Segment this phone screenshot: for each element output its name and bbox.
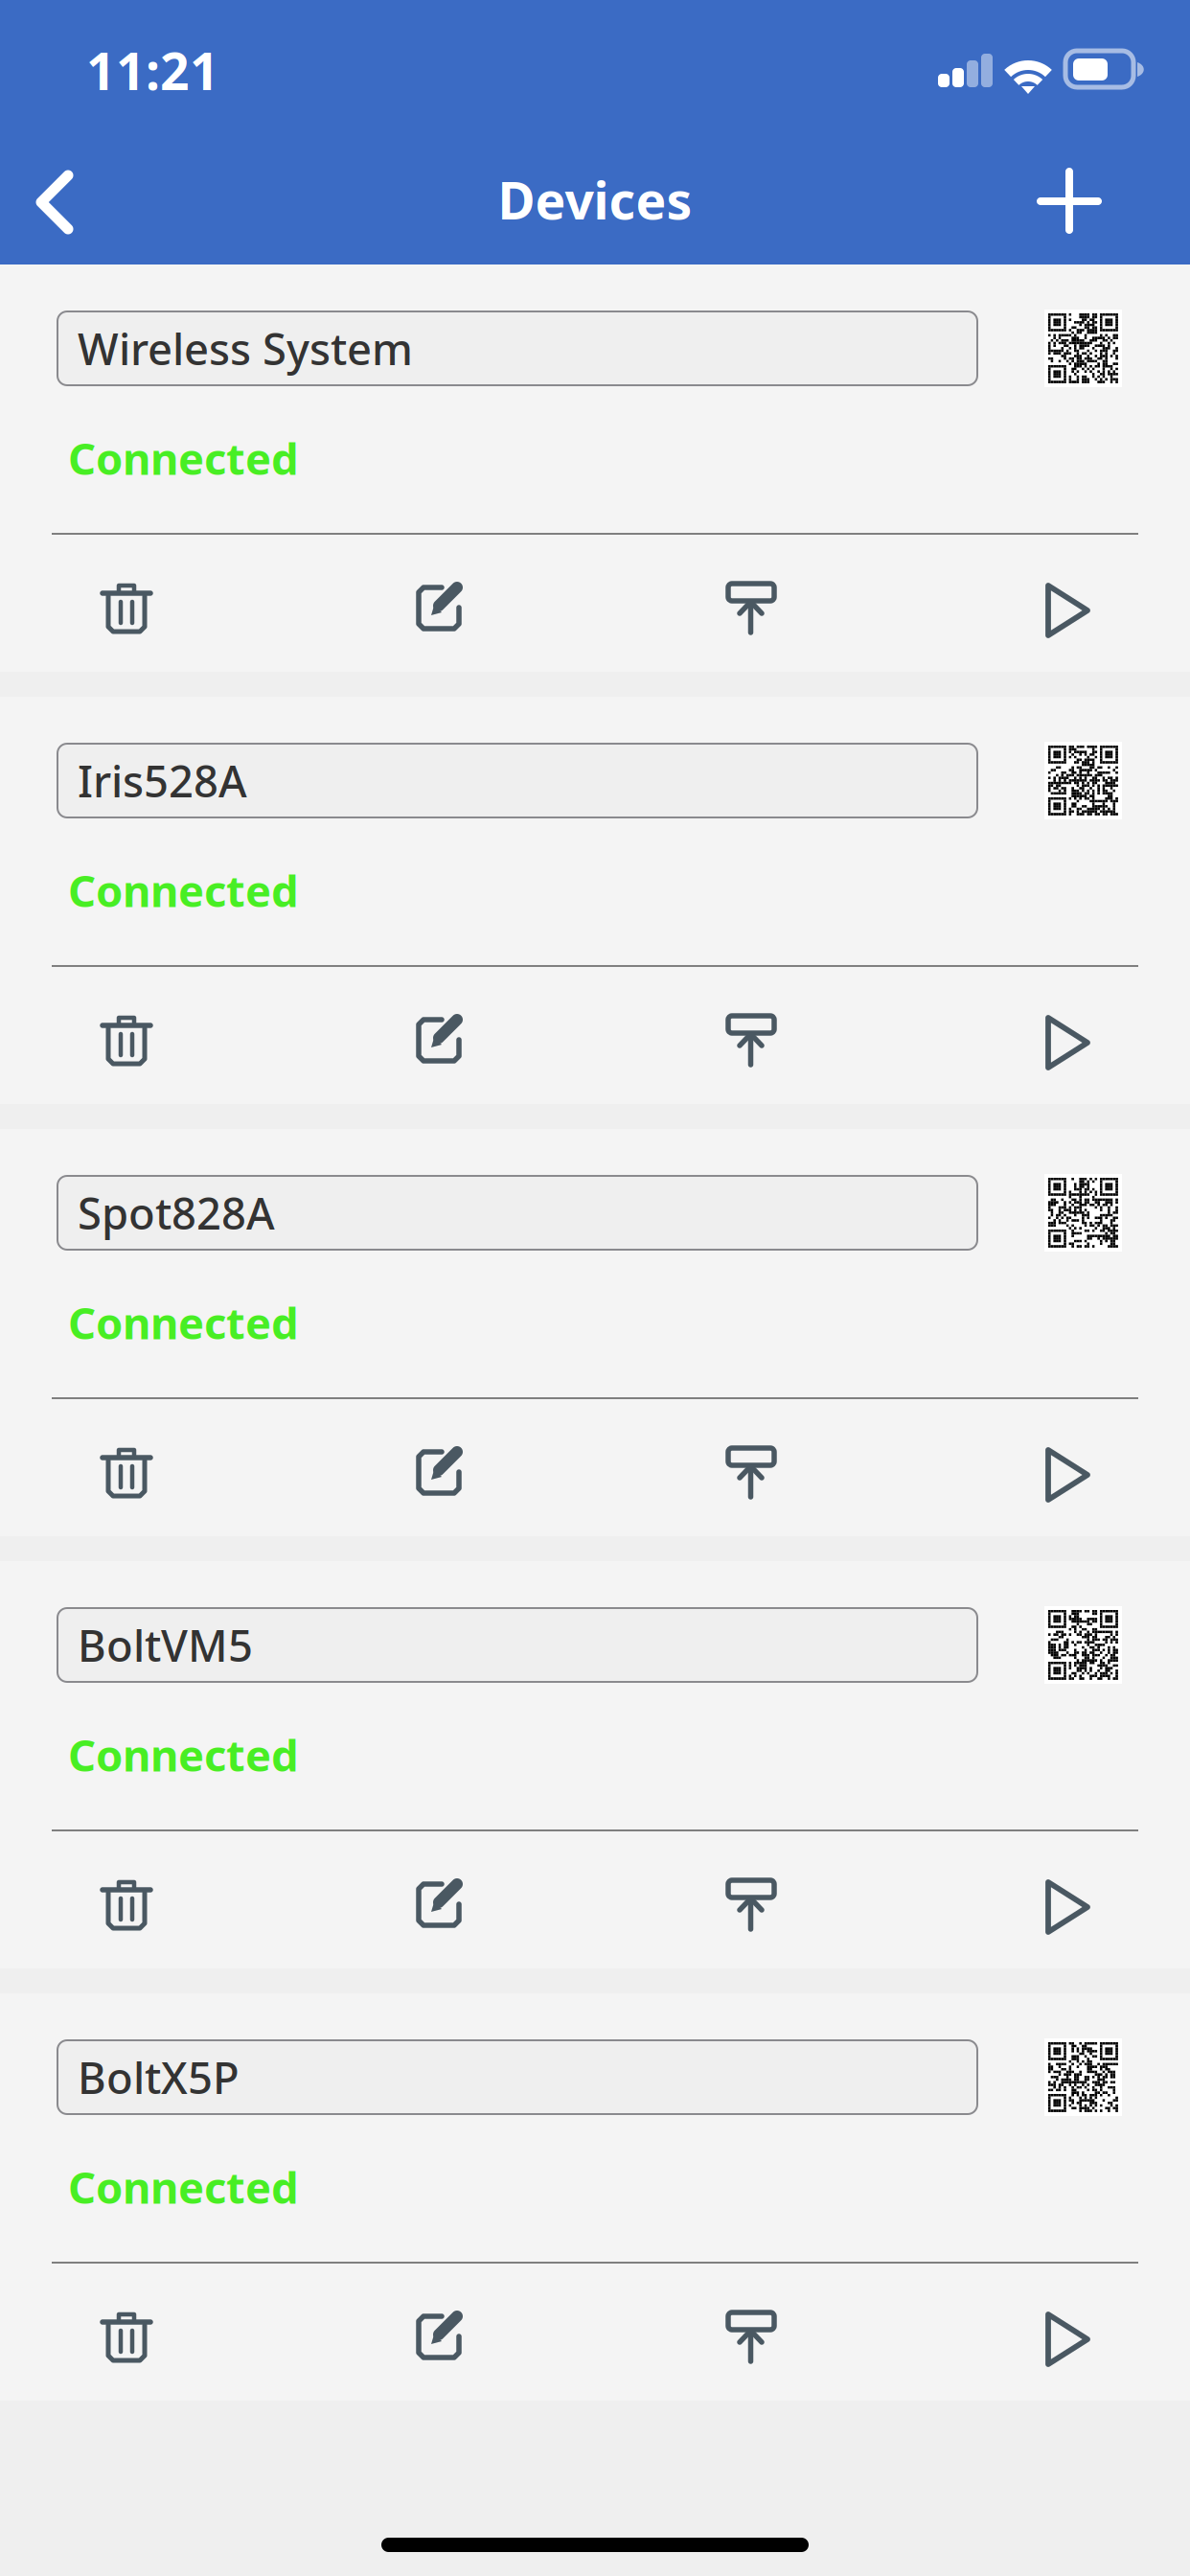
button[interactable]: Update firmware bbox=[724, 1013, 778, 1067]
button[interactable]: Show QR code for Spot828A bbox=[1044, 1174, 1122, 1252]
staticText: Wireless System bbox=[78, 320, 413, 377]
button[interactable]: Show QR code for Wireless System bbox=[1044, 310, 1122, 387]
button[interactable]: Start bbox=[1037, 581, 1090, 634]
button[interactable]: Edit bbox=[412, 1013, 466, 1067]
button[interactable]: Delete bbox=[100, 1445, 153, 1499]
button[interactable]: Update firmware bbox=[724, 1877, 778, 1931]
button[interactable]: Add device bbox=[1021, 153, 1117, 249]
button[interactable]: BoltX5P bbox=[57, 2040, 977, 2114]
button[interactable]: Delete bbox=[100, 1877, 153, 1931]
staticText: BoltX5P bbox=[78, 2048, 240, 2106]
button[interactable]: Update firmware bbox=[724, 2310, 778, 2363]
button[interactable]: Iris528A bbox=[57, 744, 977, 817]
button[interactable]: Edit bbox=[412, 581, 466, 634]
staticText: Devices bbox=[498, 166, 692, 234]
staticText: Connected bbox=[68, 861, 299, 919]
staticText: Spot828A bbox=[78, 1184, 275, 1242]
button[interactable]: Update firmware bbox=[724, 1445, 778, 1499]
button[interactable]: BoltVM5 bbox=[57, 1608, 977, 1682]
button[interactable]: Back bbox=[31, 162, 125, 267]
button[interactable]: Show QR code for BoltX5P bbox=[1044, 2038, 1122, 2116]
button[interactable]: Start bbox=[1037, 1013, 1090, 1067]
staticText: Connected bbox=[68, 2158, 299, 2216]
button[interactable]: Show QR code for Iris528A bbox=[1044, 742, 1122, 819]
button[interactable]: Wireless System bbox=[57, 311, 977, 385]
staticText: BoltVM5 bbox=[78, 1616, 253, 1674]
button[interactable]: Edit bbox=[412, 1877, 466, 1931]
button[interactable]: Spot828A bbox=[57, 1176, 977, 1250]
staticText: Connected bbox=[68, 1726, 299, 1784]
staticText: Connected bbox=[68, 429, 299, 487]
button[interactable]: Update firmware bbox=[724, 581, 778, 634]
button[interactable]: Start bbox=[1037, 1445, 1090, 1499]
button[interactable]: Edit bbox=[412, 2310, 466, 2363]
button[interactable]: Delete bbox=[100, 2310, 153, 2363]
staticText: 11:21 bbox=[86, 36, 219, 104]
staticText: Connected bbox=[68, 1294, 299, 1351]
button[interactable]: Edit bbox=[412, 1445, 466, 1499]
button[interactable]: Show QR code for BoltVM5 bbox=[1044, 1606, 1122, 1684]
button[interactable]: Start bbox=[1037, 1877, 1090, 1931]
button[interactable]: Delete bbox=[100, 581, 153, 634]
button[interactable]: Delete bbox=[100, 1013, 153, 1067]
button[interactable]: Start bbox=[1037, 2310, 1090, 2363]
staticText: Iris528A bbox=[78, 752, 247, 809]
